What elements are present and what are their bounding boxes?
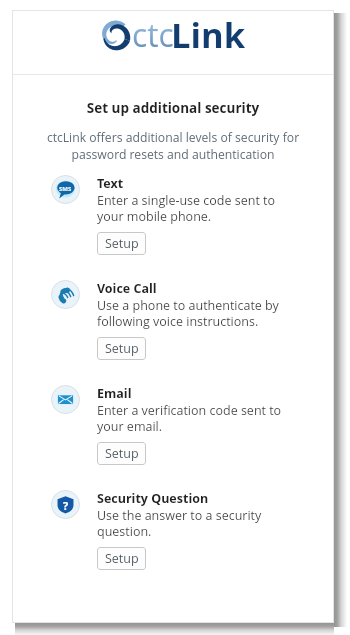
button[interactable]: Setup [97, 442, 146, 465]
staticText: Use a phone to authenticate by following… [97, 297, 287, 329]
staticText: Setup [105, 235, 139, 252]
staticText: Email [97, 385, 132, 402]
staticText: Set up additional security [12, 99, 334, 117]
other: Voice call [56, 285, 75, 304]
staticText: Setup [105, 550, 139, 567]
staticText: Setup [105, 340, 139, 357]
staticText: Security Question [97, 490, 209, 507]
button[interactable]: Setup [97, 337, 146, 360]
other: SMS [56, 180, 75, 199]
staticText: ctcLink offers additional levels of secu… [36, 129, 310, 163]
staticText: Voice Call [97, 280, 157, 297]
other: Email [56, 390, 75, 409]
staticText: Enter a single-use code sent to your mob… [97, 192, 287, 224]
staticText: Enter a verification code sent to your e… [97, 402, 287, 434]
staticText: Setup [105, 445, 139, 462]
staticText: Link [171, 11, 246, 58]
staticText: Use the answer to a security question. [97, 507, 287, 539]
other: Security question [56, 495, 75, 514]
staticText: Text [97, 175, 124, 192]
staticText: ctc [132, 13, 174, 57]
staticText: SMS [59, 185, 72, 193]
button[interactable]: Setup [97, 232, 146, 255]
button[interactable]: Setup [97, 547, 146, 570]
staticText: ? [63, 498, 69, 513]
